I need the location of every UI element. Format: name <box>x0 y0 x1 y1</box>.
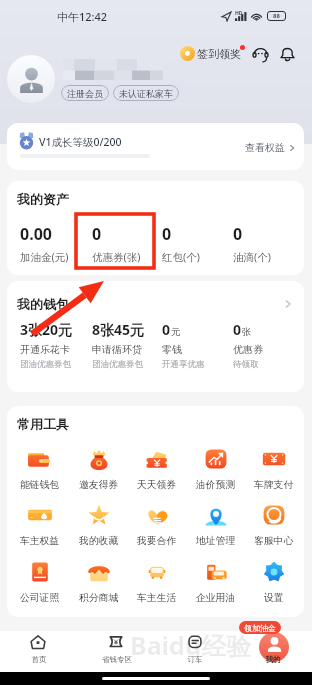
staticText: 我的钱包 <box>17 296 69 312</box>
staticText: 待领取 <box>233 359 259 370</box>
button[interactable]: 3张20元 <box>20 320 92 370</box>
button[interactable]: 首页 <box>0 631 78 672</box>
staticText: 申请循环贷 <box>92 343 142 356</box>
staticText: 我的收藏 <box>79 535 119 547</box>
button[interactable]: 省钱专区 <box>78 631 156 672</box>
staticText: 首页 <box>0 655 78 664</box>
staticText: 0 <box>92 223 102 245</box>
staticText: 车主生活 <box>137 592 177 604</box>
staticText: 加油金(元) <box>20 250 69 264</box>
button[interactable]: 我要合作 <box>124 502 189 547</box>
staticText: 省钱专区 <box>78 655 156 664</box>
button[interactable]: 0 <box>162 320 234 370</box>
staticText: Baidu经验 <box>130 628 252 662</box>
staticText: 元 <box>171 326 181 338</box>
button[interactable]: 车主权益 <box>7 502 72 547</box>
staticText: 企业用油 <box>196 592 236 604</box>
staticText: 客服中心 <box>254 535 294 547</box>
staticText: 88 <box>273 12 280 20</box>
staticText: 优惠券 <box>233 343 263 356</box>
staticText: 油滴(个) <box>233 250 271 264</box>
staticText: 公司证照 <box>20 592 60 604</box>
staticText: 查看权益 <box>245 141 285 154</box>
button[interactable]: 0 <box>92 223 162 264</box>
button[interactable]: 未认证私家车 <box>113 85 179 101</box>
button[interactable]: 8张45元 <box>92 320 164 370</box>
staticText: 0 <box>233 223 243 245</box>
button[interactable]: 车牌支付 <box>241 446 304 491</box>
button[interactable]: 公司证照 <box>7 559 72 604</box>
button[interactable]: Avatar <box>7 55 55 103</box>
staticText: 0 <box>162 223 172 245</box>
button[interactable]: 我的 <box>234 631 312 672</box>
button[interactable]: 积分商城 <box>66 559 131 604</box>
staticText: 地址管理 <box>196 535 236 547</box>
staticText: 未认证私家车 <box>119 88 173 99</box>
button[interactable]: 地址管理 <box>183 502 248 547</box>
button[interactable]: 我的收藏 <box>66 502 131 547</box>
staticText: 天天领券 <box>137 479 177 491</box>
staticText: 能链钱包 <box>20 479 60 491</box>
staticText: 邀友得券 <box>79 479 119 491</box>
button[interactable]: 0.00 <box>20 223 90 264</box>
button[interactable]: 0 <box>162 223 232 264</box>
staticText: 车牌支付 <box>254 479 294 491</box>
staticText: 领加油金 <box>244 623 276 633</box>
button[interactable]: 订车 <box>156 631 234 672</box>
staticText: 0.00 <box>20 223 52 245</box>
staticText: 订车 <box>156 655 234 664</box>
staticText: 注册会员 <box>67 88 103 99</box>
button[interactable]: 查看权益 <box>245 141 296 154</box>
button[interactable]: Customer service <box>251 44 270 63</box>
staticText: 3张20元 <box>20 320 73 339</box>
staticText: 积分商城 <box>79 592 119 604</box>
button[interactable]: 注册会员 <box>61 85 109 101</box>
staticText: 优惠券(张) <box>92 250 141 264</box>
staticText: 车主权益 <box>20 535 60 547</box>
staticText: V1成长等级0/200 <box>39 135 122 149</box>
staticText: 签到领奖 <box>197 47 241 61</box>
button[interactable]: 0 <box>233 320 304 370</box>
staticText: 8张45元 <box>92 320 145 339</box>
staticText: 油价预测 <box>196 479 236 491</box>
button[interactable]: Notifications <box>278 44 297 63</box>
staticText: 0 <box>162 320 171 339</box>
button[interactable]: 领加油金 <box>239 621 281 634</box>
staticText: 常用工具 <box>17 416 69 432</box>
staticText: 我的资产 <box>17 191 69 207</box>
staticText: HD <box>235 10 243 17</box>
button[interactable]: 天天领券 <box>124 446 189 491</box>
staticText: 开通享优惠 <box>162 359 205 370</box>
staticText: 开通乐花卡 <box>20 343 70 356</box>
staticText: 团油优惠券包 <box>20 359 71 370</box>
staticText: 中午12:42 <box>57 9 108 24</box>
button[interactable]: 车主生活 <box>124 559 189 604</box>
staticText: 0 <box>233 320 242 339</box>
staticText: 红包(个) <box>162 250 200 264</box>
button[interactable]: 邀友得券 <box>66 446 131 491</box>
button[interactable]: 企业用油 <box>183 559 248 604</box>
staticText: 我的 <box>234 655 312 664</box>
staticText: 零钱 <box>162 343 182 356</box>
button[interactable]: My wallet <box>283 299 293 309</box>
button[interactable]: 签到领奖 <box>180 46 241 61</box>
button[interactable]: 能链钱包 <box>7 446 72 491</box>
button[interactable]: 油价预测 <box>183 446 248 491</box>
staticText: 张 <box>242 326 252 338</box>
button[interactable]: 客服中心 <box>241 502 304 547</box>
staticText: 团油优惠券包 <box>92 359 143 370</box>
button[interactable]: 0 <box>233 223 303 264</box>
staticText: 我要合作 <box>137 535 177 547</box>
button[interactable]: 设置 <box>241 559 304 604</box>
staticText: 设置 <box>264 592 284 604</box>
